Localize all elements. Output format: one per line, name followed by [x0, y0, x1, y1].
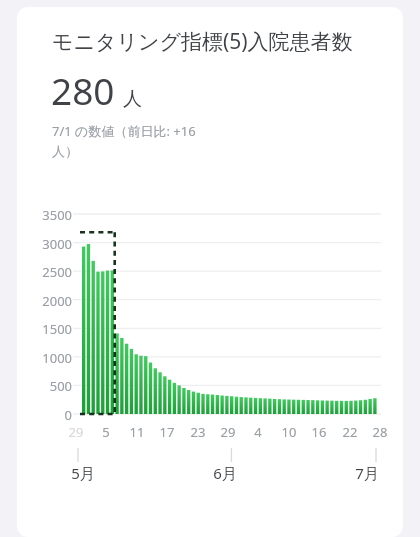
staticText: 22: [338, 423, 362, 441]
staticText: 29: [64, 423, 88, 441]
staticText: 1000: [17, 349, 72, 367]
staticText: 7月: [349, 463, 385, 483]
staticText: 2500: [17, 263, 72, 281]
staticText: 10: [277, 423, 301, 441]
button[interactable]: 入院患者数の日次推移グラフ: [17, 208, 403, 478]
staticText: 2000: [17, 292, 72, 310]
staticText: 28: [368, 423, 392, 441]
staticText: 5: [94, 423, 118, 441]
staticText: 11: [125, 423, 149, 441]
staticText: 3000: [17, 235, 72, 253]
staticText: 17: [155, 423, 179, 441]
staticText: 4: [246, 423, 270, 441]
staticText: 29: [216, 423, 240, 441]
staticText: 23: [186, 423, 210, 441]
staticText: 16: [307, 423, 331, 441]
staticText: モニタリング指標(5)入院患者数: [52, 27, 353, 56]
staticText: 5月: [65, 463, 101, 483]
staticText: 3500: [17, 206, 72, 224]
staticText: 0: [17, 406, 72, 424]
staticText: 6月: [207, 463, 243, 483]
button[interactable]: モニタリング指標(5)入院患者数: [17, 7, 403, 537]
staticText: 人: [123, 87, 142, 111]
staticText: 1500: [17, 320, 72, 338]
staticText: 7/1 の数値（前日比: +16 人）: [52, 122, 208, 160]
staticText: 280: [51, 65, 115, 115]
staticText: 500: [17, 377, 72, 395]
